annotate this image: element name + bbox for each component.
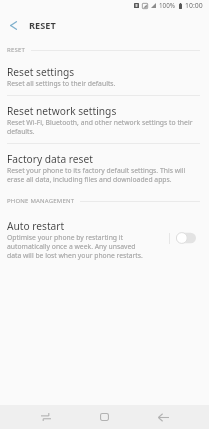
staticText: RESET	[29, 19, 56, 32]
button[interactable]: Recent apps	[16, 405, 75, 429]
staticText: RESET	[7, 46, 26, 54]
staticText: Reset network settings	[7, 104, 117, 118]
staticText: Reset all settings to their defaults.	[7, 79, 116, 88]
staticText: 10:00	[185, 1, 203, 10]
button[interactable]: Reset network settings	[0, 104, 209, 136]
button[interactable]: Home	[75, 405, 134, 429]
button[interactable]: Reset settings	[0, 65, 209, 88]
staticText: PHONE MANAGEMENT	[7, 197, 75, 205]
staticText: 100%	[159, 1, 176, 10]
staticText: Optimise your phone by restarting it aut…	[7, 233, 150, 260]
staticText: Factory data reset	[7, 152, 93, 166]
staticText: Reset settings	[7, 65, 75, 79]
staticText: Auto restart	[7, 219, 65, 233]
button[interactable]: Auto restart toggle	[170, 229, 209, 247]
button[interactable]: Back	[134, 405, 193, 429]
button[interactable]: Auto restart	[0, 219, 150, 260]
staticText: Reset your phone to its factory default …	[7, 166, 195, 184]
button[interactable]: Factory data reset	[0, 152, 209, 184]
staticText: Reset Wi-Fi, Bluetooth, and other networ…	[7, 118, 195, 136]
button[interactable]: Navigate up	[0, 13, 27, 37]
